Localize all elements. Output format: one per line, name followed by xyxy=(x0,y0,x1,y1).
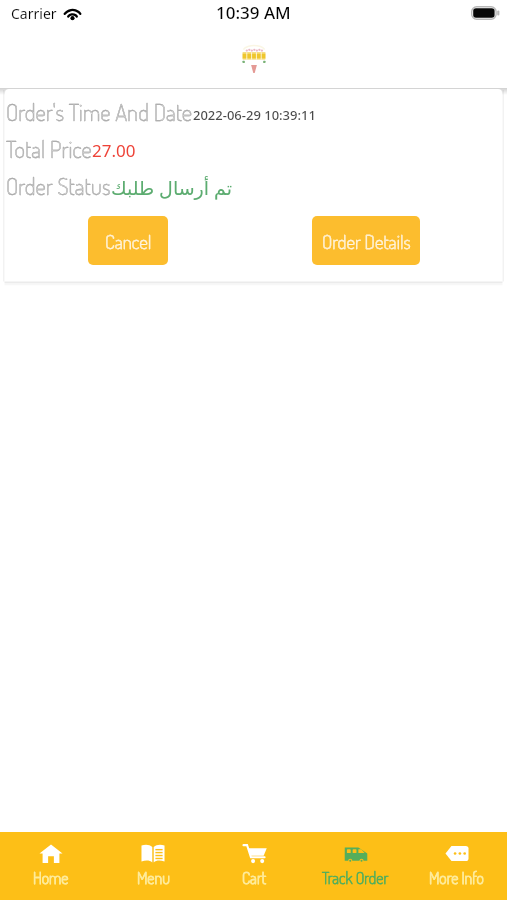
staticText: تم أرسال طلبك xyxy=(111,175,232,201)
staticText: 2022-06-29 10:39:11 xyxy=(193,106,316,124)
staticText: Order Details xyxy=(322,229,411,253)
staticText: Cancel xyxy=(105,229,152,253)
staticText: More Info xyxy=(429,868,484,888)
staticText: Track Order xyxy=(322,868,389,888)
staticText: Menu xyxy=(137,868,170,888)
staticText: Home xyxy=(33,868,69,888)
staticText: More Info xyxy=(429,868,484,888)
button[interactable]: Home xyxy=(0,832,102,900)
button[interactable]: Cart xyxy=(204,832,305,900)
staticText: Track Order xyxy=(322,868,389,888)
staticText: Menu xyxy=(137,868,170,888)
button[interactable]: More Info xyxy=(406,832,507,900)
staticText: Carrier xyxy=(11,4,57,23)
button[interactable]: Menu xyxy=(102,832,204,900)
staticText: Order's Time And Date xyxy=(6,97,193,126)
staticText: Order Status xyxy=(6,171,111,200)
staticText: Cart xyxy=(242,868,267,888)
staticText: Home xyxy=(33,868,69,888)
button[interactable]: Order Details xyxy=(312,216,420,265)
staticText: 27.00 xyxy=(92,139,136,162)
staticText: Cart xyxy=(242,868,267,888)
button[interactable]: Track Order xyxy=(305,832,406,900)
staticText: 10:39 AM xyxy=(216,1,291,24)
staticText: Total Price xyxy=(6,134,92,163)
button[interactable]: Cancel xyxy=(88,216,168,265)
